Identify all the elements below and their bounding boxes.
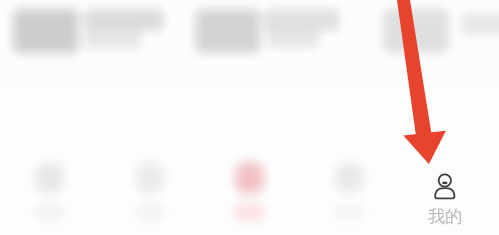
staticText: 我的 [428,206,462,227]
button[interactable]: 我的 [0,0,499,235]
